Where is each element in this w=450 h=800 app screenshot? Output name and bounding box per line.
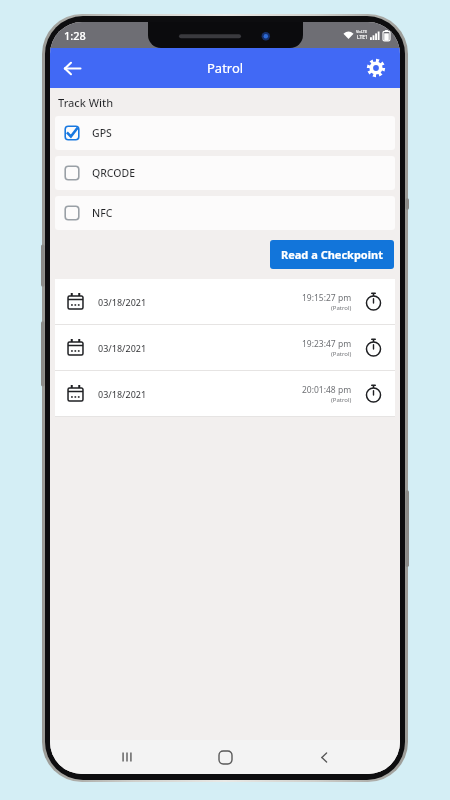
staticText: Track With [58,95,114,110]
button[interactable]: 03/18/2021 [55,371,395,416]
staticText: 03/18/2021 [98,342,147,354]
button[interactable]: NFC [55,196,395,230]
staticText: NFC [92,206,113,220]
button[interactable]: Settings [358,50,394,86]
staticText: (Patrol) [331,396,352,404]
button[interactable]: Read a Checkpoint [270,240,394,269]
staticText: Read a Checkpoint [281,247,383,262]
staticText: LTE1 [357,34,368,41]
staticText: 03/18/2021 [98,296,147,308]
button[interactable]: Back [302,740,346,774]
staticText: 20:01:48 pm [302,384,352,396]
staticText: GPS [92,126,112,140]
button[interactable]: Home [203,740,247,774]
staticText: 1:28 [64,28,86,43]
button[interactable]: Back [54,50,90,86]
staticText: QRCODE [92,166,136,180]
staticText: Patrol [207,59,244,77]
button[interactable]: 03/18/2021 [55,279,395,324]
staticText: VoLTE [356,29,368,34]
staticText: (Patrol) [331,304,352,312]
staticText: 19:15:27 pm [302,292,352,304]
staticText: 19:23:47 pm [302,338,352,350]
staticText: (Patrol) [331,350,352,358]
button[interactable]: GPS [55,116,395,150]
button[interactable]: Recent apps [105,740,149,774]
button[interactable]: QRCODE [55,156,395,190]
button[interactable]: 03/18/2021 [55,325,395,370]
staticText: 03/18/2021 [98,388,147,400]
